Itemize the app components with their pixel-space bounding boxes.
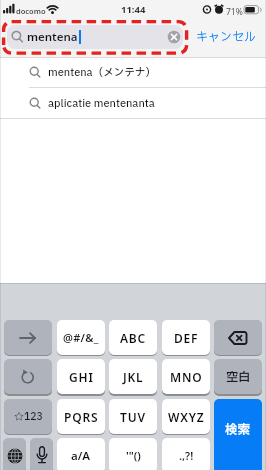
button[interactable]: [214, 320, 262, 355]
button[interactable]: [7, 25, 183, 49]
staticText: a/A: [71, 448, 91, 464]
button[interactable]: '"(): [109, 438, 157, 470]
button[interactable]: TUV: [109, 399, 157, 434]
staticText: mentena（メンテナ）: [48, 65, 156, 81]
staticText: GHI: [69, 369, 94, 385]
staticText: JKL: [123, 369, 144, 385]
button[interactable]: [166, 29, 182, 45]
button[interactable]: DEF: [162, 320, 210, 355]
staticText: aplicatie mentenanta: [48, 96, 155, 112]
button[interactable]: ☆123: [4, 399, 52, 434]
button[interactable]: [30, 438, 53, 470]
button[interactable]: [3, 438, 26, 470]
staticText: 空白: [226, 368, 251, 386]
button[interactable]: .,?!: [162, 438, 210, 470]
button[interactable]: [4, 359, 52, 394]
button[interactable]: [4, 320, 52, 355]
button[interactable]: ABC: [109, 320, 157, 355]
staticText: MNO: [170, 369, 203, 385]
staticText: ABC: [120, 330, 147, 346]
staticText: mentena: [27, 29, 78, 45]
staticText: ☆123: [14, 409, 43, 424]
staticText: '"(): [126, 448, 141, 463]
button[interactable]: JKL: [109, 359, 157, 394]
staticText: 11:44: [121, 3, 146, 16]
staticText: docomo: [16, 6, 46, 16]
staticText: DEF: [174, 330, 199, 346]
button[interactable]: GHI: [57, 359, 105, 394]
button[interactable]: 検索: [214, 399, 262, 470]
button[interactable]: 空白: [214, 359, 262, 394]
staticText: WXYZ: [168, 409, 205, 425]
button[interactable]: キャンセル: [190, 23, 262, 51]
button[interactable]: @#/&_: [57, 320, 105, 355]
staticText: 71%: [226, 6, 243, 18]
button[interactable]: a/A: [57, 438, 105, 470]
staticText: @#/&_: [63, 330, 99, 345]
button[interactable]: PQRS: [57, 399, 105, 434]
staticText: .,?!: [179, 448, 194, 463]
staticText: キャンセル: [196, 28, 256, 46]
button[interactable]: MNO: [162, 359, 210, 394]
button[interactable]: mentena（メンテナ）: [0, 57, 266, 88]
button[interactable]: aplicatie mentenanta: [0, 88, 266, 119]
staticText: PQRS: [64, 409, 99, 425]
staticText: 検索: [225, 421, 251, 440]
staticText: TUV: [120, 409, 146, 425]
button[interactable]: WXYZ: [162, 399, 210, 434]
